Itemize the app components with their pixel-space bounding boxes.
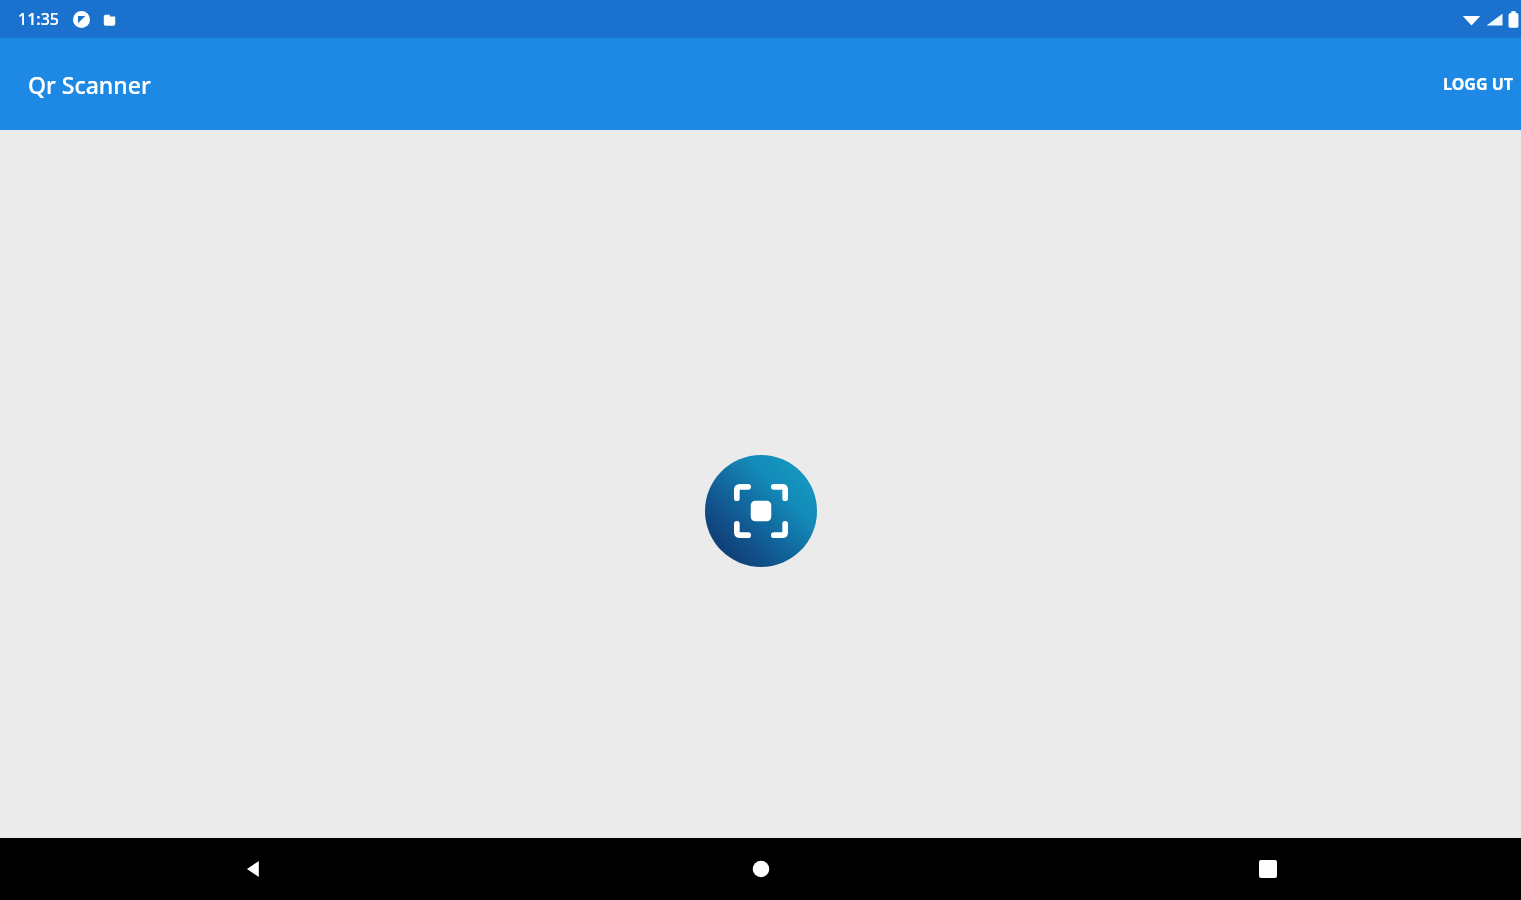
staticText: 11:35: [18, 8, 59, 30]
staticText: LOGG UT: [1443, 73, 1513, 95]
staticText: Qr Scanner: [28, 69, 151, 100]
button[interactable]: Back: [0, 838, 507, 900]
button[interactable]: Home: [507, 838, 1014, 900]
button[interactable]: LOGG UT: [1435, 63, 1521, 105]
button[interactable]: Recent apps: [1014, 838, 1521, 900]
button[interactable]: Scan QR code: [705, 455, 817, 567]
